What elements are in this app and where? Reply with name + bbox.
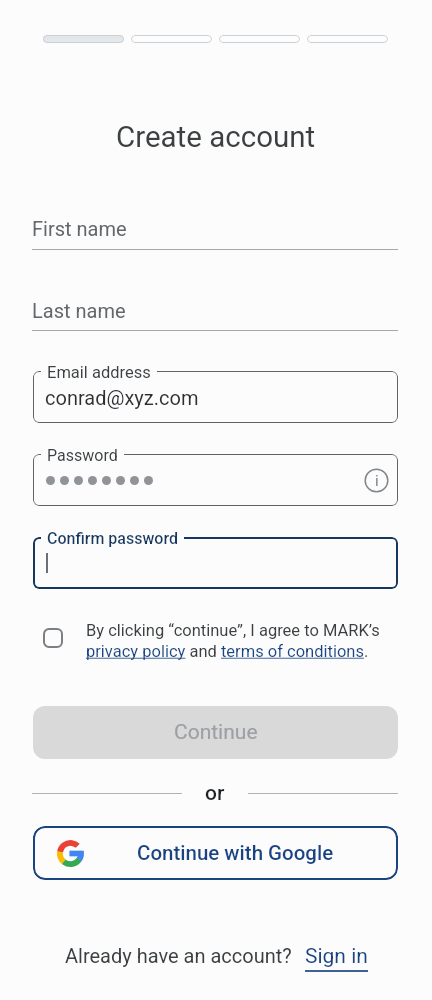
staticText: conrad@xyz.com (45, 386, 199, 409)
button[interactable]: Agree to terms (43, 628, 63, 648)
button[interactable]: Continue with Google (33, 826, 398, 880)
staticText: Continue (174, 720, 258, 745)
button[interactable]: First name (32, 217, 398, 240)
staticText: Confirm password (47, 529, 178, 548)
button[interactable]: Password info (364, 468, 389, 493)
staticText: Password (47, 446, 118, 465)
staticText: Already have an account? (65, 944, 292, 967)
button[interactable] (219, 35, 300, 43)
button[interactable] (307, 35, 388, 43)
staticText: Last name (32, 299, 126, 322)
button[interactable]: Last name (32, 299, 398, 322)
button[interactable]: Password info (33, 454, 398, 506)
staticText: Create account (116, 120, 316, 155)
button[interactable]: Sign in (305, 944, 368, 972)
staticText: or (205, 781, 225, 806)
staticText: Continue with Google (137, 841, 334, 865)
staticText: i (375, 472, 379, 490)
staticText: First name (32, 217, 127, 240)
button[interactable]: conrad@xyz.com (33, 371, 398, 423)
staticText: privacy policy and terms of conditions. (86, 642, 369, 661)
staticText: Sign in (305, 944, 368, 969)
button[interactable] (43, 35, 124, 43)
staticText: By clicking “continue”, I agree to MARK’… (86, 621, 380, 640)
button[interactable] (33, 537, 398, 589)
button[interactable]: Continue (33, 706, 398, 759)
button[interactable] (131, 35, 212, 43)
staticText: Email address (47, 363, 151, 382)
